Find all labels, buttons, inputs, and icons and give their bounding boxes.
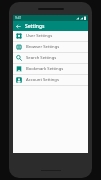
button[interactable]: Browser Settings	[13, 42, 88, 52]
button[interactable]: Account Settings	[13, 75, 88, 85]
button[interactable]: Search Settings	[13, 53, 88, 63]
staticText: Bookmark Settings	[26, 66, 64, 72]
staticText: Browser Settings	[26, 44, 60, 50]
staticText: Search Settings	[26, 55, 57, 61]
button[interactable]: Bookmark Settings	[13, 64, 88, 74]
staticText: User Settings	[26, 33, 53, 39]
staticText: Account Settings	[26, 77, 59, 83]
button[interactable]: User Settings	[13, 31, 88, 41]
button[interactable]: Navigate up	[15, 23, 22, 30]
staticText: 9:41	[15, 16, 22, 20]
staticText: Settings	[25, 23, 45, 30]
